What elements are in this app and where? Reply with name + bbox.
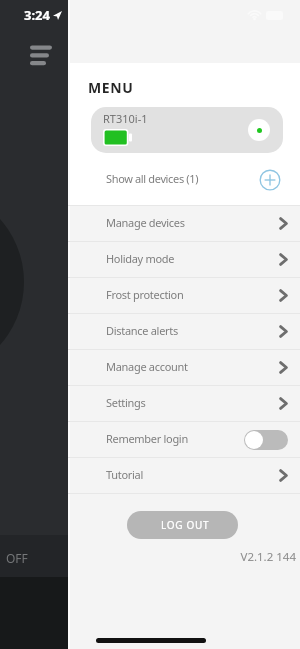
button[interactable]: Add device	[259, 169, 281, 191]
staticText: 3:24	[24, 6, 50, 24]
staticText: V2.1.2 144	[68, 549, 296, 565]
button[interactable]: Manage account	[68, 350, 300, 385]
button[interactable]: Show all devices (1)	[68, 160, 300, 196]
button[interactable]: Frost protection	[68, 278, 300, 313]
button[interactable]	[244, 430, 288, 450]
button[interactable]: Open navigation menu	[30, 44, 54, 66]
staticText: Manage devices	[106, 215, 185, 230]
staticText: Frost protection	[106, 287, 184, 302]
staticText: Settings	[106, 395, 146, 410]
button[interactable]: Manage devices	[68, 206, 300, 241]
button[interactable]: Remember login	[68, 422, 300, 457]
button[interactable]: RT310i-1	[91, 107, 283, 153]
staticText: RT310i-1	[103, 111, 148, 126]
staticText: Tutorial	[106, 467, 143, 482]
button[interactable]: Tutorial	[68, 458, 300, 493]
button[interactable]: Distance alerts	[68, 314, 300, 349]
staticText: Remember login	[106, 431, 188, 446]
button[interactable]: Holiday mode	[68, 242, 300, 277]
staticText: Manage account	[106, 359, 188, 374]
button[interactable]: LOG OUT	[127, 511, 238, 539]
staticText: LOG OUT	[161, 518, 210, 532]
staticText: Holiday mode	[106, 251, 175, 266]
staticText: MENU	[88, 78, 134, 97]
staticText: OFF	[6, 550, 28, 566]
staticText: Distance alerts	[106, 323, 178, 338]
staticText: Show all devices (1)	[106, 171, 199, 186]
button[interactable]: Settings	[68, 386, 300, 421]
